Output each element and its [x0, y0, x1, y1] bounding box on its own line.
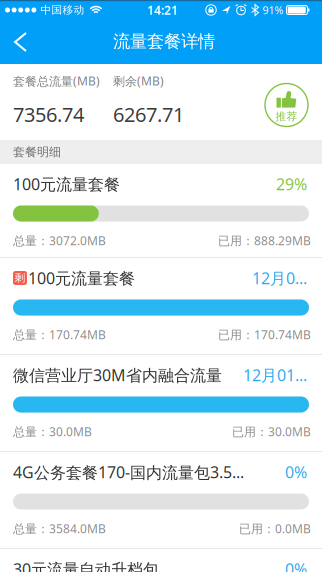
staticText: 91%	[262, 3, 283, 17]
staticText: 套餐总流量(MB)	[13, 73, 100, 89]
staticText: 已用：888.29MB	[218, 232, 311, 248]
staticText: 已用：0.0MB	[239, 520, 311, 536]
staticText: 微信营业厅30M省内融合流量	[13, 364, 222, 386]
staticText: 4G公务套餐170-国内流量包3.5...	[13, 461, 244, 483]
staticText: 总量：3072.0MB	[13, 232, 106, 248]
staticText: 100元流量套餐	[13, 173, 120, 195]
staticText: 已用：30.0MB	[232, 423, 311, 439]
staticText: 6267.71	[113, 101, 184, 127]
staticText: 流量套餐详情	[113, 31, 215, 52]
button[interactable]: 剩	[0, 258, 322, 355]
button[interactable]: 4G公务套餐170-国内流量包3.5...	[0, 452, 322, 549]
staticText: 30元流量自动升档包	[13, 558, 159, 572]
staticText: 29%	[276, 173, 307, 195]
button[interactable]: 推荐	[265, 83, 308, 126]
staticText: 12月0...	[252, 267, 307, 289]
staticText: 中国移动	[40, 3, 84, 16]
button[interactable]: 微信营业厅30M省内融合流量	[0, 355, 322, 452]
button[interactable]: 100元流量套餐	[0, 164, 322, 258]
staticText: 剩余(MB)	[113, 73, 164, 89]
staticText: 已用：170.74MB	[218, 326, 311, 342]
staticText: 7356.74	[13, 101, 84, 127]
staticText: 0%	[285, 461, 307, 483]
staticText: 总量：30.0MB	[13, 423, 92, 439]
staticText: 14:21	[147, 2, 178, 18]
staticText: 套餐明细	[13, 145, 61, 159]
staticText: 100元流量套餐	[28, 267, 135, 289]
staticText: 总量：3584.0MB	[13, 520, 106, 536]
staticText: 12月01...	[243, 364, 307, 386]
button[interactable]: Back	[0, 20, 44, 64]
staticText: 推荐	[275, 110, 297, 123]
staticText: 总量：170.74MB	[13, 326, 106, 342]
staticText: 0%	[285, 558, 307, 572]
button[interactable]: 30元流量自动升档包	[0, 549, 322, 572]
staticText: 剩	[14, 271, 25, 284]
